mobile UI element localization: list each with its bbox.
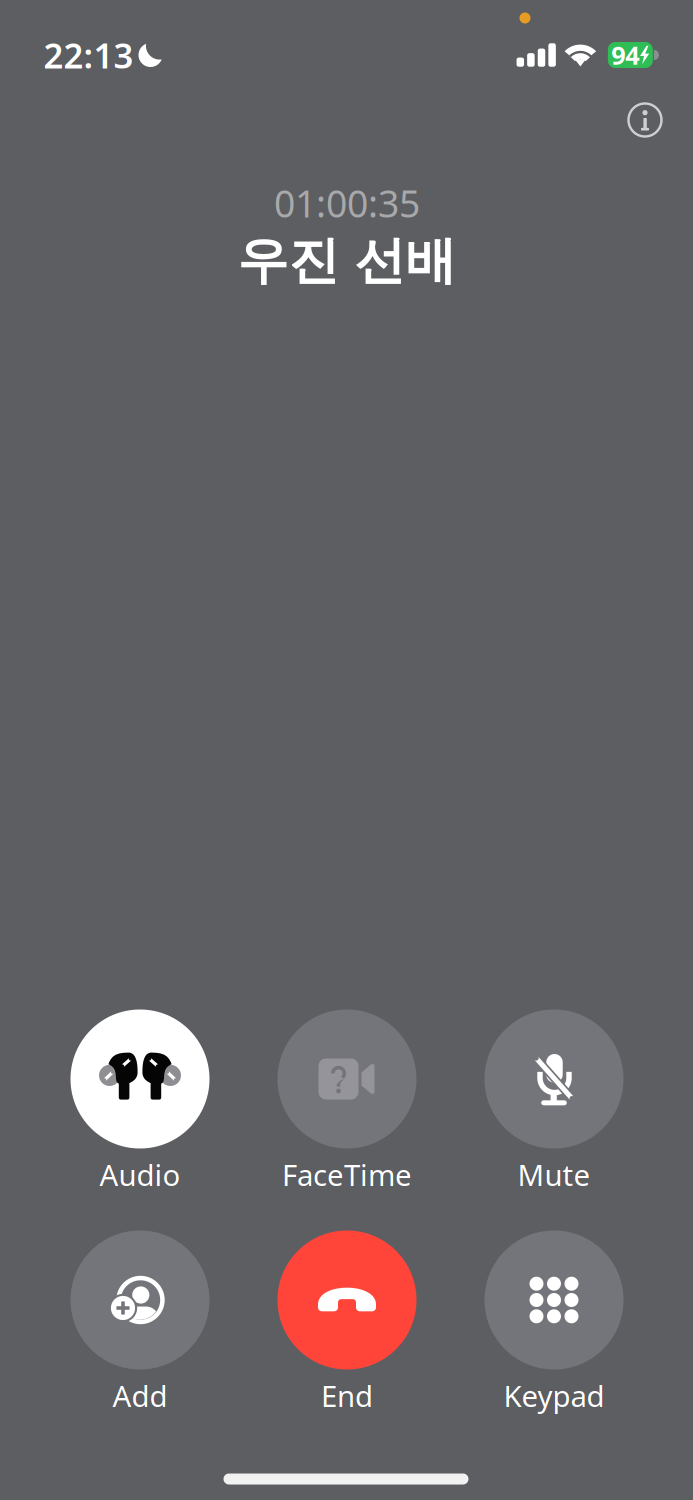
staticText: 94 <box>611 38 639 72</box>
staticText: 01:00:35 <box>274 178 420 228</box>
staticText: Mute <box>517 1155 590 1194</box>
button[interactable]: Audio <box>40 1008 240 1193</box>
staticText: Keypad <box>503 1376 604 1415</box>
button[interactable]: End <box>247 1229 447 1414</box>
staticText: End <box>321 1376 373 1415</box>
staticText: Audio <box>99 1155 180 1194</box>
staticText: 22:13 <box>43 32 133 78</box>
button[interactable]: Call information <box>617 92 673 148</box>
staticText: Add <box>112 1376 167 1415</box>
staticText: 우진 선배 <box>237 230 456 292</box>
button[interactable]: Mute <box>454 1008 654 1193</box>
button[interactable]: Add <box>40 1229 240 1414</box>
staticText: FaceTime <box>282 1155 412 1194</box>
button[interactable]: Keypad <box>454 1229 654 1414</box>
button[interactable]: FaceTime <box>247 1008 447 1193</box>
